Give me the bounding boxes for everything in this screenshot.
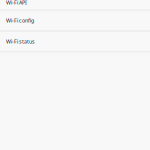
button[interactable]: Wi-Fi config: [0, 10, 150, 31]
staticText: Wi-Fi config: [6, 17, 34, 24]
button[interactable]: Wi-Fi API: [0, 0, 150, 10]
button[interactable]: Wi-Fi status: [0, 31, 150, 52]
staticText: Wi-Fi status: [6, 38, 35, 45]
staticText: Wi-Fi API: [6, 0, 27, 6]
